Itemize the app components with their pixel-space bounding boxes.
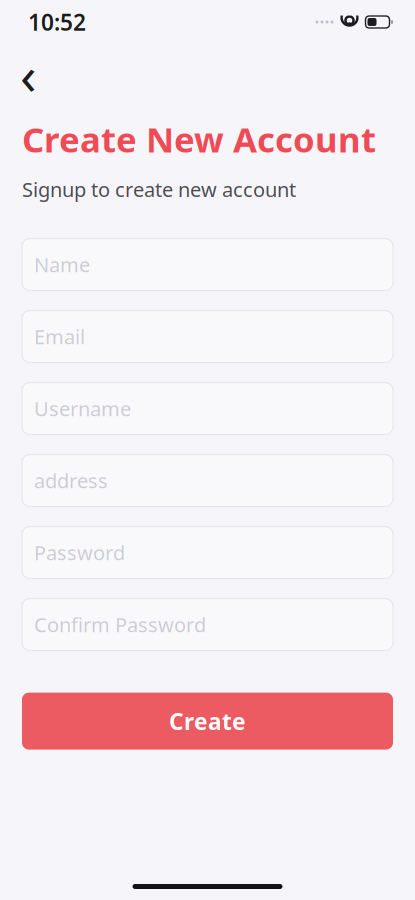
staticText: 10:52 [28, 7, 86, 37]
staticText: Create [169, 706, 246, 736]
button[interactable]: Back [0, 54, 64, 94]
button[interactable]: Password [22, 527, 393, 579]
staticText: Name [34, 251, 90, 278]
button[interactable]: Name [22, 239, 393, 291]
button[interactable]: Confirm Password [22, 599, 393, 651]
staticText: ‹ [20, 39, 37, 109]
button[interactable]: address [22, 455, 393, 507]
staticText: Username [34, 395, 131, 422]
staticText: Confirm Password [34, 611, 206, 638]
button[interactable]: Create [22, 693, 393, 750]
staticText: Password [34, 539, 125, 566]
staticText: Signup to create new account [22, 176, 296, 203]
staticText: Email [34, 323, 85, 350]
button[interactable]: Username [22, 383, 393, 435]
staticText: Create New Account [22, 116, 376, 162]
button[interactable]: Email [22, 311, 393, 363]
staticText: address [34, 467, 108, 494]
